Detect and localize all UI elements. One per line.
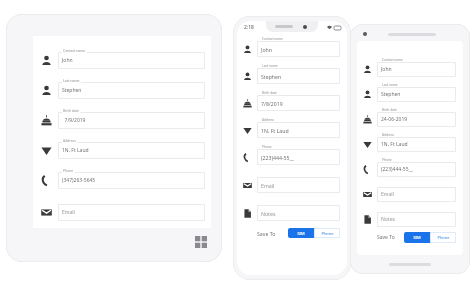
button[interactable]: Phone <box>377 162 456 177</box>
button[interactable]: SIM <box>288 228 314 238</box>
staticText: Last name <box>63 78 80 83</box>
button[interactable]: Address <box>377 137 456 152</box>
button[interactable]: Birth date <box>257 95 340 111</box>
staticText: Last name <box>382 83 398 87</box>
button[interactable]: Phone <box>430 232 456 243</box>
staticText: Address <box>63 138 76 143</box>
staticText: Notes <box>381 216 395 223</box>
staticText: John <box>62 57 73 64</box>
staticText: John <box>381 66 392 73</box>
staticText: 7/8/2019 <box>261 100 283 107</box>
staticText: Address <box>262 118 275 122</box>
button[interactable]: Last name <box>58 82 205 99</box>
button[interactable]: Phone <box>314 228 340 238</box>
button[interactable]: Address <box>58 142 205 159</box>
staticText: Phone <box>321 231 334 236</box>
button[interactable]: Notes <box>257 205 340 221</box>
staticText: SIM <box>297 231 305 236</box>
staticText: Stephen <box>62 87 82 94</box>
staticText: Phone <box>382 158 392 162</box>
staticText: (347)263-5645 <box>62 177 96 184</box>
staticText: 1N, Ft Laud <box>62 147 89 154</box>
button[interactable]: Notes <box>377 212 456 227</box>
staticText: 1N, Ft Laud <box>381 141 408 148</box>
button[interactable]: Contact name <box>257 41 340 57</box>
button[interactable]: Address <box>257 122 340 138</box>
staticText: Last name <box>262 64 278 68</box>
staticText: Stephen <box>261 73 282 80</box>
staticText: Contact name <box>262 37 283 41</box>
button[interactable]: Email <box>377 187 456 202</box>
button[interactable]: Last name <box>377 87 456 102</box>
button[interactable]: Email <box>257 177 340 193</box>
button[interactable]: Last name <box>257 68 340 84</box>
staticText: Birth date <box>382 108 397 112</box>
staticText: Save To <box>377 234 395 241</box>
staticText: Stephen <box>381 91 401 98</box>
button[interactable]: Birth date <box>377 112 456 127</box>
staticText: Save To <box>257 230 276 237</box>
staticText: Birth date <box>63 108 79 113</box>
button[interactable]: Contact name <box>58 52 205 69</box>
staticText: Phone <box>262 145 272 149</box>
staticText: Email <box>381 191 394 198</box>
staticText: 24-06-2019 <box>381 116 408 123</box>
staticText: 7/9/2019 <box>62 117 86 124</box>
staticText: SIM <box>413 235 421 240</box>
staticText: Birth date <box>262 91 277 95</box>
staticText: Phone <box>63 168 74 173</box>
staticText: Contact name <box>382 58 403 62</box>
staticText: John <box>261 46 272 53</box>
staticText: Notes <box>261 210 276 217</box>
button[interactable]: Windows <box>195 236 207 248</box>
button[interactable]: Contact name <box>377 62 456 77</box>
button[interactable]: SIM <box>404 232 430 243</box>
button[interactable]: Birth date <box>58 112 205 129</box>
button[interactable]: Phone <box>257 149 340 165</box>
staticText: Email <box>62 209 75 216</box>
staticText: (223)444-55__ <box>381 166 413 173</box>
button[interactable]: Email <box>58 204 205 221</box>
staticText: Contact name <box>63 48 86 53</box>
staticText: 1N, Ft Laud <box>261 127 289 134</box>
staticText: Email <box>261 182 275 189</box>
button[interactable]: Phone <box>58 172 205 189</box>
staticText: Phone <box>437 235 450 240</box>
staticText: (223)444-55__ <box>261 154 295 161</box>
staticText: 2:18 <box>244 24 254 31</box>
staticText: Address <box>382 133 395 137</box>
